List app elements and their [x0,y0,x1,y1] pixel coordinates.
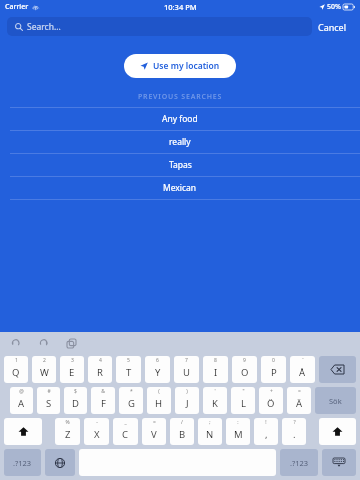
staticText: 2 [43,357,46,364]
staticText: X [94,428,100,441]
button[interactable]: Search... [7,17,312,36]
button[interactable]: @ [10,387,33,414]
button[interactable]: 8 [203,356,228,383]
button[interactable]: ( [147,387,171,414]
button[interactable]: " [231,387,255,414]
button[interactable]: 5 [116,356,141,383]
staticText: ' [214,388,216,395]
staticText: 4 [99,357,102,364]
button[interactable]: 3 [60,356,84,383]
button[interactable]: really [0,131,360,153]
staticText: S [46,397,52,410]
button[interactable]: $ [64,387,87,414]
staticText: 7 [185,357,188,364]
button[interactable]: Mexican [0,177,360,199]
staticText: . [293,428,296,441]
button[interactable]: 2 [32,356,56,383]
staticText: 10:34 PM [164,2,197,12]
staticText: Any food [162,113,198,125]
button[interactable]: 0 [261,356,286,383]
button[interactable]: : [226,418,250,445]
staticText: Q [12,366,20,379]
button[interactable]: 9 [232,356,257,383]
button[interactable]: .?123 [280,449,318,476]
button[interactable]: _ [113,418,138,445]
button[interactable]: 7 [174,356,199,383]
staticText: = [298,388,301,395]
staticText: " [242,388,245,395]
button[interactable]: * [119,387,143,414]
button[interactable]: Cancel [312,17,353,37]
staticText: L [241,397,246,410]
button[interactable]: Shift [319,418,356,445]
button[interactable]: & [91,387,115,414]
button[interactable]: Shift [4,418,42,445]
staticText: ` [302,357,304,364]
staticText: @ [19,388,24,395]
staticText: & [101,388,105,395]
button[interactable]: Tapas [0,154,360,176]
staticText: ) [186,388,188,395]
staticText: 50% [327,2,341,12]
button[interactable]: .?123 [4,449,41,476]
button[interactable]: = [142,418,166,445]
button[interactable]: + [259,387,283,414]
button[interactable]: 6 [145,356,170,383]
button[interactable]: ' [203,387,227,414]
staticText: 0 [272,357,275,364]
staticText: 8 [214,357,217,364]
button[interactable]: Backspace [319,356,356,383]
button[interactable]: Change keyboard [45,449,75,476]
staticText: Y [155,366,161,379]
button[interactable]: ; [198,418,222,445]
staticText: 9 [243,357,246,364]
staticText: R [97,366,103,379]
staticText: , [265,428,268,441]
button[interactable]: Redo [36,336,50,350]
staticText: ! [265,419,267,426]
button[interactable]: Hide keyboard [322,449,356,476]
button[interactable]: 4 [88,356,112,383]
button[interactable]: Use my location [124,54,236,78]
staticText: N [206,428,214,441]
button[interactable]: % [55,418,80,445]
staticText: Å [299,366,306,379]
staticText: C [122,428,129,441]
button[interactable]: = [287,387,311,414]
staticText: / [181,419,183,426]
staticText: really [169,136,191,148]
button[interactable]: Paste [64,336,78,350]
staticText: 5 [127,357,130,364]
button[interactable]: ) [175,387,199,414]
button[interactable]: 1 [4,356,28,383]
button[interactable]: Sök [315,387,356,414]
staticText: O [241,366,249,379]
staticText: M [234,428,243,441]
button[interactable]: ! [254,418,278,445]
staticText: Cancel [318,21,347,33]
button[interactable]: # [37,387,60,414]
staticText: I [214,366,218,379]
staticText: F [101,397,106,410]
staticText: + [270,388,273,395]
staticText: Z [65,428,71,441]
staticText: : [237,419,239,426]
button[interactable]: ? [282,418,306,445]
button[interactable]: Undo [8,336,22,350]
button[interactable]: / [170,418,194,445]
button[interactable]: Any food [0,108,360,130]
staticText: 1 [15,357,18,364]
staticText: .?123 [13,458,32,468]
staticText: Ö [267,397,275,410]
staticText: E [69,366,75,379]
staticText: ? [293,419,296,426]
staticText: ( [158,388,160,395]
button[interactable]: ` [290,356,315,383]
staticText: 3 [71,357,74,364]
staticText: J [186,397,189,410]
staticText: Search... [27,21,61,33]
staticText: Use my location [153,60,220,72]
staticText: H [155,397,163,410]
button[interactable]: - [84,418,109,445]
